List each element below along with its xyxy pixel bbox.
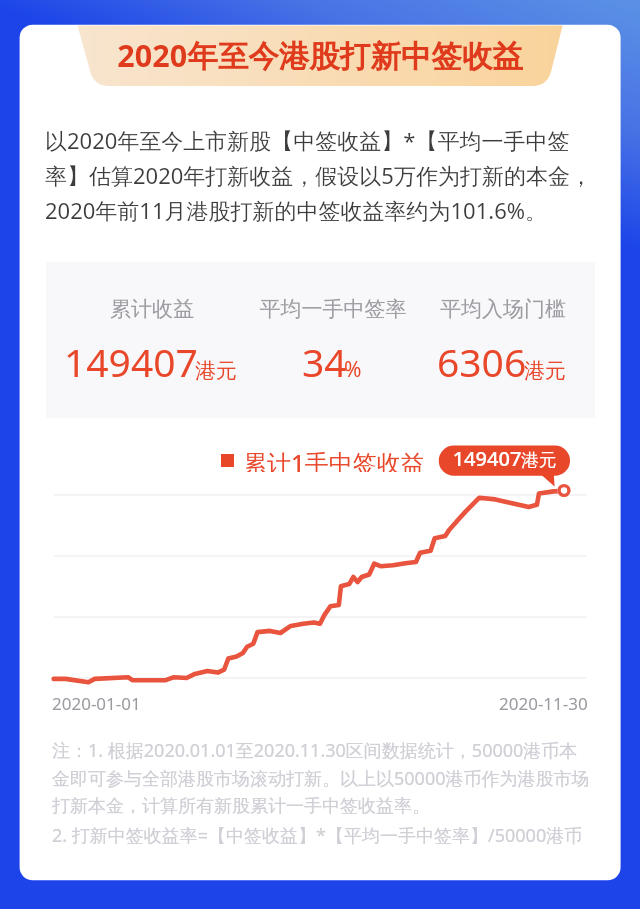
button[interactable]: 累计1手中签收益 [221, 446, 421, 472]
staticText: % [344, 355, 362, 384]
button[interactable]: 累计收益 [22, 262, 282, 418]
staticText: 2020年至今港股打新中签收益 [18, 34, 622, 76]
staticText: 2020-11-30 [499, 692, 588, 715]
staticText: 34 [302, 335, 347, 388]
staticText: 注：1. 根据2020.01.01至2020.11.30区间数据统计，50000… [52, 738, 592, 817]
button[interactable]: 平均入场门槛 [373, 262, 633, 418]
staticText: 以2020年至今上市新股【中签收益】*【平均一手中签率】估算2020年打新收益，… [45, 125, 597, 225]
staticText: 2020-01-01 [52, 692, 141, 715]
staticText: 平均入场门槛 [373, 296, 633, 322]
staticText: 2. 打新中签收益率=【中签收益】*【平均一手中签率】/50000港币 [52, 823, 612, 848]
button[interactable]: 平均一手中签率 [203, 262, 463, 418]
staticText: 累计1手中签收益 [243, 446, 425, 472]
staticText: 平均一手中签率 [203, 296, 463, 322]
staticText: 港元 [195, 358, 237, 384]
staticText: 6306 [437, 335, 527, 388]
staticText: 149407港元 [439, 445, 570, 476]
staticText: 港元 [524, 358, 566, 384]
staticText: 149407 [64, 335, 198, 388]
staticText: 累计收益 [22, 296, 282, 322]
